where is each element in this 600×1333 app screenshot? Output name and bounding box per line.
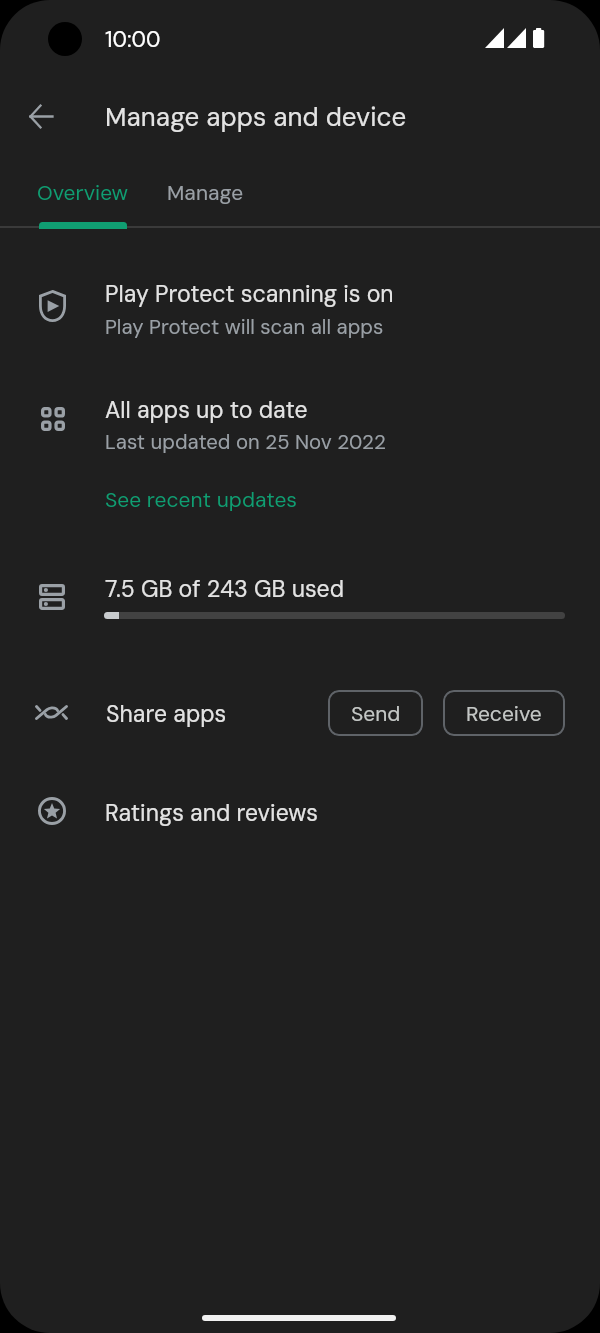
staticText: Play Protect will scan all apps <box>105 314 384 340</box>
staticText: 10:00 <box>105 25 161 54</box>
button[interactable]: Overview <box>30 170 136 229</box>
button[interactable]: Ratings and reviews <box>0 770 600 856</box>
button[interactable]: Play Protect scanning is on <box>0 262 600 362</box>
staticText: All apps up to date <box>105 395 308 425</box>
staticText: Share apps <box>106 699 227 729</box>
button[interactable]: 7.5 GB of 243 GB used <box>0 556 600 646</box>
staticText: 7.5 GB of 243 GB used <box>105 574 344 604</box>
button[interactable]: Send <box>328 690 423 736</box>
staticText: Play Protect scanning is on <box>105 279 394 309</box>
staticText: Last updated on 25 Nov 2022 <box>105 429 386 455</box>
staticText: Manage <box>167 179 244 206</box>
staticText: See recent updates <box>105 486 298 513</box>
button[interactable]: Receive <box>443 690 565 736</box>
staticText: Manage apps and device <box>105 100 407 134</box>
staticText: Ratings and reviews <box>105 798 319 828</box>
button[interactable]: See recent updates <box>96 475 289 523</box>
staticText: Send <box>351 700 401 727</box>
button[interactable]: Manage <box>156 170 254 229</box>
staticText: Receive <box>466 700 542 727</box>
button[interactable]: Back <box>17 92 65 140</box>
button[interactable]: All apps up to date <box>0 378 600 478</box>
staticText: Overview <box>37 179 129 206</box>
